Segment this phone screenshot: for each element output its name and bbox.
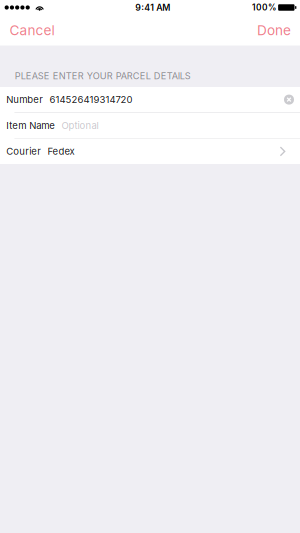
staticText: 614526419314720 bbox=[50, 94, 133, 105]
staticText: Done bbox=[257, 22, 291, 38]
staticText: Optional bbox=[62, 120, 99, 131]
staticText: Courier bbox=[6, 146, 41, 157]
staticText: Item Name bbox=[6, 120, 55, 131]
button[interactable]: Courier bbox=[0, 139, 300, 164]
staticText: PLEASE ENTER YOUR PARCEL DETAILS bbox=[15, 70, 191, 81]
button[interactable]: Clear text bbox=[278, 87, 300, 112]
button[interactable]: Done bbox=[247, 18, 300, 42]
staticText: Fedex bbox=[48, 146, 75, 157]
staticText: 9:41 AM bbox=[135, 2, 170, 13]
staticText: 100% bbox=[252, 2, 276, 13]
staticText: Number bbox=[6, 94, 43, 105]
staticText: Cancel bbox=[9, 22, 54, 38]
button[interactable]: Cancel bbox=[0, 18, 64, 42]
